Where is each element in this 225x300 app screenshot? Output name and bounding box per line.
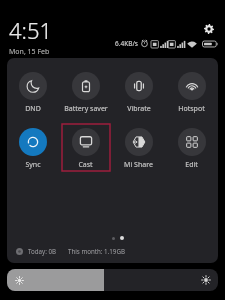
button[interactable]: Mi Share <box>112 128 165 170</box>
button[interactable]: Sync <box>7 128 59 170</box>
staticText: Battery saver <box>64 104 108 114</box>
staticText: Mi Share <box>124 160 153 170</box>
staticText: Hotspot <box>178 104 205 114</box>
button[interactable]: Battery saver <box>59 72 112 114</box>
staticText: 4:51 <box>9 15 53 45</box>
button[interactable]: Vibrate <box>112 72 165 114</box>
staticText: Cast <box>78 160 93 170</box>
staticText: This month: 1.19GB <box>68 247 125 255</box>
button[interactable]: Brightness <box>7 269 218 291</box>
staticText: 6.4KB/s <box>115 39 138 48</box>
staticText: Mon, 15 Feb <box>9 47 50 57</box>
button[interactable]: Cast <box>59 128 112 170</box>
staticText: Sync <box>25 160 41 170</box>
staticText: Today: 0B <box>28 247 57 255</box>
staticText: Vibrate <box>127 104 151 114</box>
staticText: DND <box>25 104 41 114</box>
button[interactable]: Hotspot <box>165 72 218 114</box>
button[interactable]: Edit <box>165 128 218 170</box>
button[interactable]: Settings <box>201 21 216 36</box>
staticText: Edit <box>185 160 198 170</box>
button[interactable]: DND <box>7 72 59 114</box>
